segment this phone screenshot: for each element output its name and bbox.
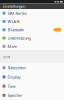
staticText: Display [7,74,20,79]
staticText: Mehr [7,44,17,49]
button[interactable]: Speicher [0,91,64,100]
button[interactable]: Töne [0,81,64,91]
staticText: Töne [7,83,15,89]
staticText: Speicher [7,93,22,98]
staticText: Datennutzung [7,35,30,41]
button[interactable]: Ruhezeiten [0,63,64,72]
staticText: Bluetooth [7,27,23,32]
staticText: Einstellungen [3,4,25,9]
staticText: Gerät [3,55,10,59]
button[interactable]: Datennutzung [0,34,64,42]
staticText: SIM-Karten [7,10,26,16]
staticText: Ruhezeiten [7,65,25,70]
button[interactable]: Display [0,72,64,81]
button[interactable]: Bluetooth [0,26,64,34]
button[interactable]: Mehr [0,42,64,50]
staticText: WLAN [7,19,19,24]
button[interactable]: WLAN [0,17,64,26]
button[interactable]: SIM-Karten [0,9,64,17]
